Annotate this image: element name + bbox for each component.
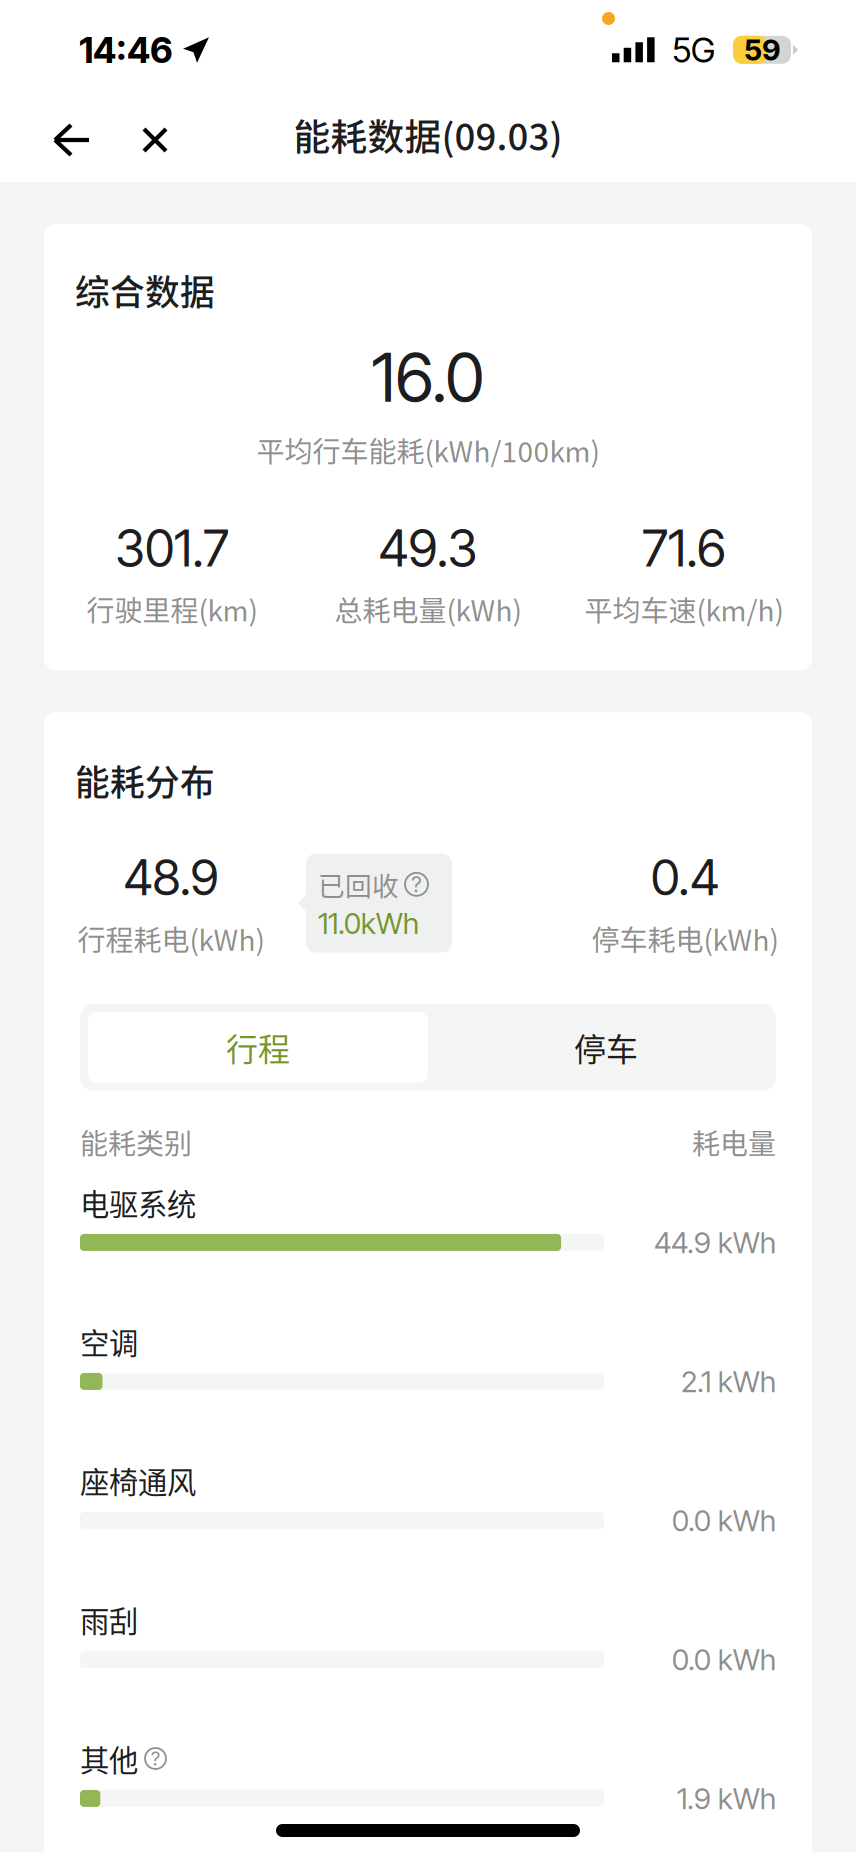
staticText: 平均行车能耗(kWh/100km)	[256, 430, 599, 470]
button[interactable]: 关闭	[105, 101, 185, 179]
staticText: 0.0 kWh	[672, 1642, 776, 1677]
staticText: 雨刮	[80, 1598, 138, 1641]
staticText: 综合数据	[75, 265, 215, 315]
staticText: 2.1 kWh	[681, 1364, 776, 1399]
staticText: 49.3	[378, 517, 477, 579]
staticText: 停车	[574, 1024, 638, 1070]
staticText: 14:46	[79, 28, 173, 72]
staticText: 5G	[672, 29, 715, 71]
staticText: 行驶里程(km)	[86, 589, 257, 629]
staticText: 48.9	[123, 847, 218, 907]
staticText: 301.7	[115, 517, 229, 579]
staticText: 能耗类别	[80, 1122, 192, 1162]
staticText: 44.9 kWh	[654, 1225, 776, 1260]
button[interactable]: 行程	[80, 1004, 436, 1091]
staticText: 平均车速(km/h)	[584, 589, 783, 629]
staticText: 空调	[80, 1320, 138, 1363]
staticText: 11.0kWh	[318, 906, 419, 941]
staticText: 耗电量	[692, 1122, 776, 1162]
staticText: ?	[411, 871, 421, 897]
staticText: 电驱系统	[80, 1181, 196, 1224]
staticText: 行程	[226, 1024, 290, 1070]
staticText: 已回收	[318, 865, 399, 904]
staticText: 座椅通风	[80, 1459, 196, 1502]
staticText: 1.9 kWh	[677, 1781, 776, 1816]
button[interactable]: 返回	[39, 101, 105, 179]
button[interactable]: 停车	[436, 1004, 776, 1091]
staticText: 59	[744, 32, 780, 67]
staticText: 其他	[80, 1737, 138, 1780]
staticText: 停车耗电(kWh)	[591, 918, 778, 959]
staticText: 能耗数据(09.03)	[293, 108, 562, 161]
staticText: 0.0 kWh	[672, 1503, 776, 1538]
staticText: 总耗电量(kWh)	[334, 589, 521, 629]
staticText: ?	[151, 1747, 160, 1770]
staticText: 能耗分布	[75, 755, 215, 805]
staticText: 行程耗电(kWh)	[77, 918, 264, 959]
staticText: 0.4	[651, 847, 719, 907]
staticText: 16.0	[371, 337, 484, 418]
staticText: 71.6	[642, 517, 726, 579]
